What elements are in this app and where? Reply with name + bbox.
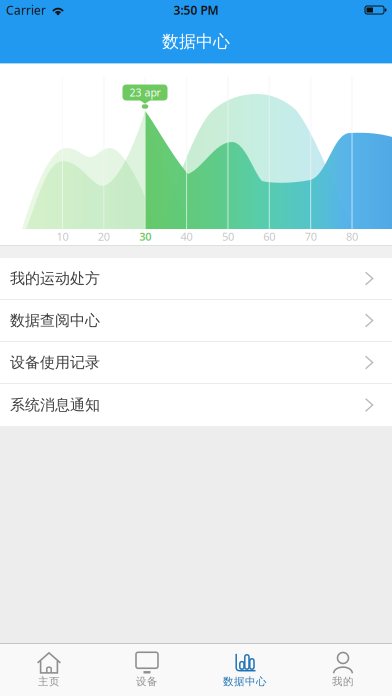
button[interactable]: 数据中心 [196, 644, 294, 696]
staticText: 数据查阅中心 [10, 311, 100, 330]
staticText: Carrier [6, 2, 46, 18]
staticText: 23 apr [129, 85, 160, 100]
button[interactable]: 数据查阅中心 [0, 300, 392, 341]
button[interactable]: 设备 [98, 644, 196, 696]
staticText: 30 [139, 229, 151, 244]
staticText: 数据中心 [162, 31, 230, 52]
staticText: 我的运动处方 [10, 269, 100, 288]
button[interactable]: 设备使用记录 [0, 342, 392, 383]
staticText: 50 [222, 229, 234, 244]
staticText: 系统消息通知 [10, 396, 100, 414]
staticText: 10 [56, 229, 68, 244]
button[interactable]: 主页 [0, 644, 98, 696]
staticText: 40 [181, 229, 193, 244]
staticText: 我的 [332, 675, 354, 688]
button[interactable]: 我的 [294, 644, 392, 696]
staticText: 数据中心 [223, 675, 267, 688]
staticText: 60 [263, 229, 275, 244]
button[interactable]: 我的运动处方 [0, 258, 392, 299]
staticText: 3:50 PM [173, 2, 218, 18]
staticText: 设备 [136, 675, 158, 688]
staticText: 20 [98, 229, 110, 244]
button[interactable]: 系统消息通知 [0, 384, 392, 426]
staticText: 主页 [38, 675, 60, 688]
staticText: 设备使用记录 [10, 353, 100, 372]
staticText: 80 [346, 229, 358, 244]
staticText: 70 [305, 229, 317, 244]
